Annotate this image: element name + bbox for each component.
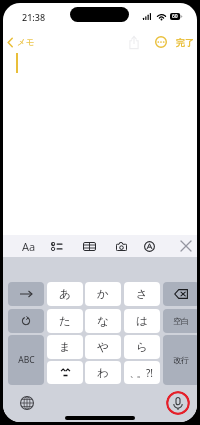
button[interactable]: ま	[47, 335, 83, 359]
button[interactable]: Emoticons	[47, 361, 83, 384]
staticText: 21:38	[22, 11, 46, 23]
staticText: 、。	[131, 367, 145, 380]
button[interactable]: わ	[85, 361, 121, 384]
button[interactable]: Delete	[163, 282, 197, 306]
staticText: 60	[172, 13, 178, 20]
button[interactable]: や	[85, 335, 121, 359]
button[interactable]: か	[85, 282, 121, 306]
button[interactable]: Markup	[139, 235, 159, 257]
staticText: さ	[136, 287, 148, 301]
button[interactable]: た	[47, 309, 83, 333]
button[interactable]: さ	[124, 282, 160, 306]
button[interactable]: Table	[79, 235, 99, 257]
button[interactable]: Dictation	[166, 391, 190, 415]
button[interactable]: な	[85, 309, 121, 333]
staticText: た	[59, 314, 71, 328]
staticText: 空白	[173, 316, 189, 326]
staticText: わ	[97, 366, 109, 380]
button[interactable]: は	[124, 309, 160, 333]
staticText: は	[136, 314, 148, 328]
staticText: 改行	[173, 355, 189, 365]
staticText: Aa	[22, 239, 36, 254]
button[interactable]: メモ	[6, 33, 35, 52]
button[interactable]: Hide keyboard	[176, 235, 196, 257]
button[interactable]: Next keyboard	[17, 393, 37, 413]
button[interactable]: 完了	[173, 32, 197, 52]
staticText: な	[97, 314, 109, 328]
staticText: あ	[59, 287, 71, 301]
staticText: か	[97, 287, 109, 301]
button[interactable]: Checklist	[46, 235, 66, 257]
button[interactable]: 空白	[163, 309, 197, 333]
button[interactable]: あ	[47, 282, 83, 306]
staticText: メモ	[17, 37, 35, 48]
button[interactable]: Aa	[19, 235, 39, 257]
staticText: ABC	[18, 354, 35, 366]
button[interactable]: Next	[8, 282, 44, 306]
button[interactable]: ABC	[8, 335, 44, 385]
staticText: ま	[59, 340, 71, 354]
button[interactable]: Undo	[8, 309, 44, 333]
staticText: 完了	[176, 37, 194, 48]
button[interactable]: Punctuation	[124, 361, 160, 384]
button[interactable]: Share	[126, 32, 142, 52]
staticText: や	[97, 340, 109, 354]
staticText: ?!	[146, 366, 154, 380]
button[interactable]: 改行	[163, 335, 197, 385]
staticText: ら	[136, 340, 148, 354]
button[interactable]: Camera	[111, 235, 131, 257]
button[interactable]: ら	[124, 335, 160, 359]
button[interactable]: More options	[152, 32, 170, 52]
